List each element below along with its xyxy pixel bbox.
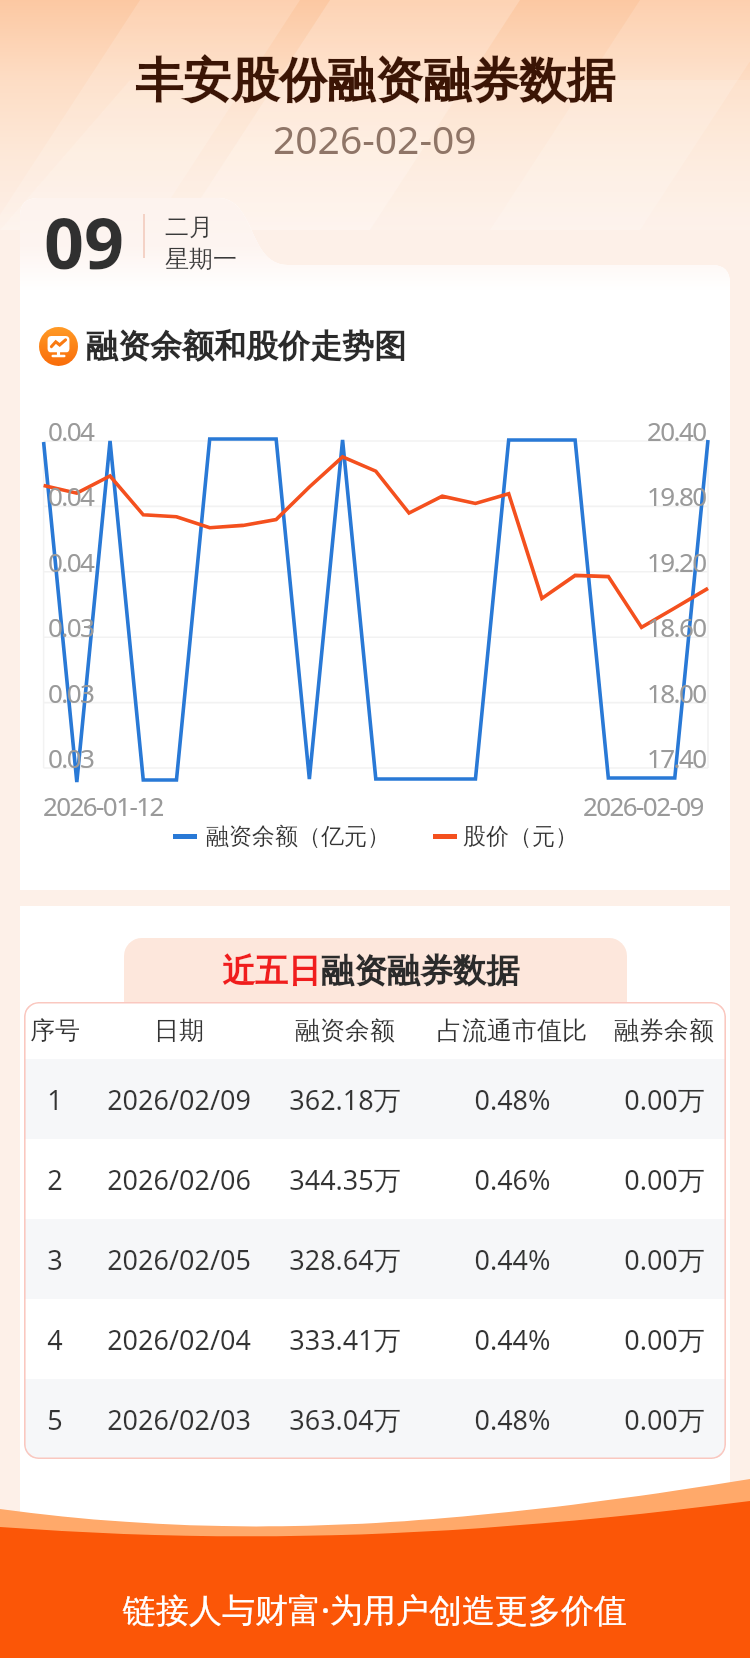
staticText: 19.20 [647,544,706,579]
staticText: 19.80 [647,478,706,513]
staticText: 2026/02/05 [107,1241,251,1278]
staticText: 2026/02/06 [107,1161,251,1198]
staticText: 2026-01-12 [43,788,163,823]
staticText: 0.48% [474,1081,551,1118]
staticText: 0.44% [474,1241,551,1278]
staticText: 占流通市值比 [437,1015,587,1046]
staticText: 2026-02-09 [583,788,703,823]
button[interactable]: 3 [24,1219,726,1299]
staticText: 09 [44,194,125,289]
staticText: 0.00万 [624,1321,705,1358]
staticText: 0.03 [48,740,94,775]
staticText: 2026/02/09 [107,1081,251,1118]
staticText: 0.00万 [624,1081,705,1118]
staticText: 5 [47,1401,63,1438]
staticText: 2026-02-09 [273,112,477,165]
staticText: 1 [47,1081,63,1118]
staticText: 0.00万 [624,1241,705,1278]
staticText: 链接人与财富·为用户创造更多价值 [123,1587,627,1632]
button[interactable]: 5 [24,1379,726,1459]
staticText: 333.41万 [289,1321,401,1358]
staticText: 362.18万 [289,1081,401,1118]
staticText: 0.00万 [624,1161,705,1198]
staticText: 融资余额 [295,1015,395,1046]
staticText: 0.46% [474,1161,551,1198]
staticText: 0.44% [474,1321,551,1358]
staticText: 日期 [154,1015,204,1046]
staticText: 丰安股份融资融券数据 [135,51,615,111]
staticText: 股价（元） [463,822,578,851]
button[interactable]: 2 [24,1139,726,1219]
staticText: 0.03 [48,609,94,644]
staticText: 344.35万 [289,1161,401,1198]
staticText: 0.03 [48,675,94,710]
staticText: 18.00 [647,675,706,710]
staticText: 0.00万 [624,1401,705,1438]
staticText: 序号 [30,1015,80,1046]
staticText: 2026/02/03 [107,1401,251,1438]
staticText: 3 [47,1241,63,1278]
staticText: 328.64万 [289,1241,401,1278]
staticText: 融券余额 [614,1015,714,1046]
staticText: 融资余额和股价走势图 [86,326,406,366]
staticText: 2026/02/04 [107,1321,251,1358]
staticText: 0.04 [48,544,94,579]
staticText: 363.04万 [289,1401,401,1438]
staticText: 二月 [165,212,213,242]
staticText: 0.04 [48,478,94,513]
button[interactable]: 1 [24,1059,726,1139]
staticText: 2 [47,1161,63,1198]
staticText: 4 [47,1321,63,1358]
staticText: 17.40 [647,740,706,775]
staticText: 0.48% [474,1401,551,1438]
staticText: 融资融券数据 [321,950,519,992]
staticText: 20.40 [647,413,706,448]
staticText: 近五日 [222,950,321,992]
staticText: 18.60 [647,609,706,644]
button[interactable]: 4 [24,1299,726,1379]
staticText: 星期一 [165,244,237,274]
staticText: 融资余额（亿元） [206,822,390,851]
staticText: 0.04 [48,413,94,448]
